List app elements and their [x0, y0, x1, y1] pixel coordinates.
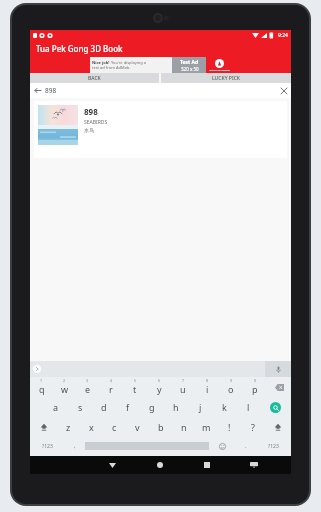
staticText: w [61, 383, 69, 395]
staticText: e [85, 383, 91, 395]
button[interactable]: 8 [195, 377, 219, 397]
button[interactable]: 898 [34, 101, 287, 158]
staticText: d [101, 401, 107, 413]
staticText: 898 [45, 86, 57, 95]
staticText: y [157, 383, 162, 395]
staticText: z [66, 421, 71, 433]
button[interactable]: ! [218, 417, 241, 437]
staticText: l [247, 401, 250, 413]
button[interactable]: Nice job! [90, 57, 232, 73]
staticText: 3 [86, 378, 89, 383]
staticText: h [173, 401, 179, 413]
button[interactable]: z [57, 417, 80, 437]
staticText: AdMob by Google [209, 68, 230, 71]
staticText: 8 [206, 378, 209, 383]
staticText: ! [228, 421, 231, 433]
staticText: c [112, 421, 117, 433]
staticText: BACK [88, 75, 101, 82]
staticText: u [180, 383, 186, 395]
staticText: , [74, 442, 76, 450]
button[interactable]: Emoji [209, 437, 236, 455]
button[interactable]: Back [88, 456, 136, 474]
button[interactable]: 0 [243, 377, 267, 397]
staticText: i [206, 383, 209, 395]
staticText: 898 [84, 106, 98, 117]
button[interactable]: Backspace [267, 377, 291, 397]
button[interactable]: Shift [30, 417, 57, 437]
staticText: ? [251, 421, 255, 433]
button[interactable]: f [116, 397, 140, 417]
button[interactable]: LUCKY PICK [161, 73, 291, 83]
staticText: f [126, 401, 130, 413]
button[interactable]: Voice input [265, 361, 291, 377]
button[interactable]: 3 [76, 377, 99, 397]
button[interactable]: b [149, 417, 172, 437]
staticText: You're displaying a [110, 60, 147, 65]
staticText: test ad from AdMob. [92, 65, 131, 70]
button[interactable]: ?123 [256, 437, 291, 455]
staticText: o [228, 383, 234, 395]
button[interactable]: Expand suggestions [30, 361, 44, 377]
button[interactable]: Recent apps [183, 456, 230, 474]
staticText: m [202, 421, 211, 433]
button[interactable]: BACK [30, 73, 159, 83]
staticText: 320 x 50 [181, 66, 199, 72]
button[interactable]: l [236, 397, 260, 417]
button[interactable]: n [172, 417, 195, 437]
button[interactable]: m [195, 417, 218, 437]
staticText: 5 [134, 378, 137, 383]
staticText: Tua Pek Gong 3D Book [36, 43, 123, 54]
staticText: 2 [63, 378, 66, 383]
button[interactable]: 1 [30, 377, 53, 397]
button[interactable]: 5 [123, 377, 147, 397]
button[interactable]: 2 [53, 377, 76, 397]
staticText: . [245, 442, 247, 450]
button[interactable]: ? [241, 417, 264, 437]
button[interactable]: a [43, 397, 68, 417]
button[interactable]: x [80, 417, 103, 437]
staticText: 9:24 [278, 32, 288, 39]
staticText: k [222, 401, 227, 413]
staticText: r [109, 383, 113, 395]
button[interactable]: Shift [264, 417, 291, 437]
button[interactable]: 9 [219, 377, 243, 397]
button[interactable]: j [188, 397, 212, 417]
button[interactable]: Hide keyboard [230, 456, 277, 474]
button[interactable]: , [65, 437, 85, 455]
button[interactable]: 7 [171, 377, 195, 397]
button[interactable]: g [140, 397, 164, 417]
button[interactable]: s [68, 397, 92, 417]
staticText: LUCKY PICK [212, 75, 241, 82]
staticText: g [149, 401, 155, 413]
staticText: t [133, 383, 137, 395]
staticText: 9 [230, 378, 233, 383]
button[interactable]: c [103, 417, 126, 437]
button[interactable]: h [164, 397, 188, 417]
staticText: p [252, 383, 258, 395]
button[interactable]: Search [260, 397, 291, 417]
button[interactable]: 4 [99, 377, 123, 397]
button[interactable]: Back [30, 83, 45, 98]
staticText: n [181, 421, 187, 433]
button[interactable]: ?123 [30, 437, 65, 455]
staticText: ?123 [42, 443, 53, 450]
staticText: 6 [158, 378, 161, 383]
staticText: a [53, 401, 59, 413]
button[interactable]: 6 [147, 377, 171, 397]
button[interactable]: v [126, 417, 149, 437]
staticText: 4 [110, 378, 113, 383]
staticText: q [39, 383, 45, 395]
button[interactable]: Home [136, 456, 183, 474]
button[interactable]: k [212, 397, 236, 417]
staticText: Test Ad [180, 59, 199, 66]
staticText: b [158, 421, 164, 433]
staticText: 0 [254, 378, 257, 383]
staticText: x [89, 421, 94, 433]
staticText: ?123 [268, 443, 279, 450]
button[interactable]: d [92, 397, 116, 417]
button[interactable]: Tua Pek Gong 3D Book [30, 40, 291, 57]
button[interactable]: Clear [276, 83, 291, 98]
staticText: SEABIRDS [84, 119, 108, 126]
